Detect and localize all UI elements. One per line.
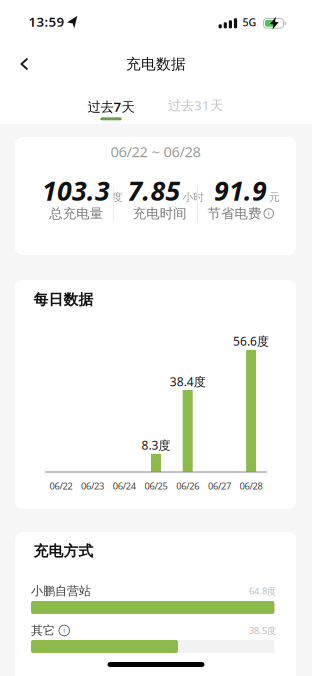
button[interactable] xyxy=(6,46,42,82)
button[interactable]: i xyxy=(59,625,69,636)
staticText: 节 xyxy=(207,205,220,222)
staticText: 充电数据 xyxy=(126,55,186,73)
staticText: 过去7天 xyxy=(87,98,134,115)
staticText: 5G xyxy=(242,15,256,29)
staticText: 小鹏自营站 xyxy=(31,584,91,598)
staticText: 充 xyxy=(133,205,146,222)
staticText: 06/26 xyxy=(176,480,199,492)
staticText: 过去31天 xyxy=(168,96,223,114)
staticText: i xyxy=(63,626,65,635)
staticText: 06/23 xyxy=(81,480,104,492)
staticText: 38.5度 xyxy=(249,624,276,637)
staticText: 小时 xyxy=(182,191,204,204)
staticText: 06/27 xyxy=(208,480,231,492)
staticText: 13:59 xyxy=(28,13,64,30)
staticText: 总 xyxy=(49,205,62,222)
button[interactable]: i xyxy=(264,209,273,218)
staticText: 103.3 xyxy=(42,173,110,208)
staticText: 06/22 xyxy=(49,480,72,492)
staticText: 91.9 xyxy=(214,173,267,208)
staticText: 8.3度 xyxy=(141,437,170,453)
staticText: 充 xyxy=(63,205,76,222)
staticText: 电 xyxy=(146,205,159,222)
button[interactable]: 过去7天 xyxy=(87,98,134,120)
staticText: i xyxy=(268,209,270,218)
staticText: 间 xyxy=(173,205,186,222)
staticText: 38.4度 xyxy=(170,373,206,389)
staticText: 费 xyxy=(248,205,261,222)
staticText: 每日数据 xyxy=(33,290,93,308)
staticText: 电 xyxy=(234,205,247,222)
staticText: 06/25 xyxy=(144,480,167,492)
button[interactable]: 过去31天 xyxy=(168,90,223,120)
staticText: 电 xyxy=(76,205,89,222)
staticText: 其它 xyxy=(31,623,55,638)
staticText: 06/22 ~ 06/28 xyxy=(110,142,200,161)
staticText: 量 xyxy=(90,205,103,222)
staticText: 时 xyxy=(160,205,173,222)
staticText: 元 xyxy=(269,191,280,204)
staticText: 64.8度 xyxy=(249,585,276,597)
staticText: 06/28 xyxy=(240,480,263,492)
staticText: 06/24 xyxy=(113,480,136,492)
staticText: 度 xyxy=(112,191,123,204)
staticText: 56.6度 xyxy=(233,333,269,349)
staticText: 7.85 xyxy=(127,173,180,208)
staticText: 充电方式 xyxy=(33,542,93,560)
staticText: 省 xyxy=(221,205,234,222)
